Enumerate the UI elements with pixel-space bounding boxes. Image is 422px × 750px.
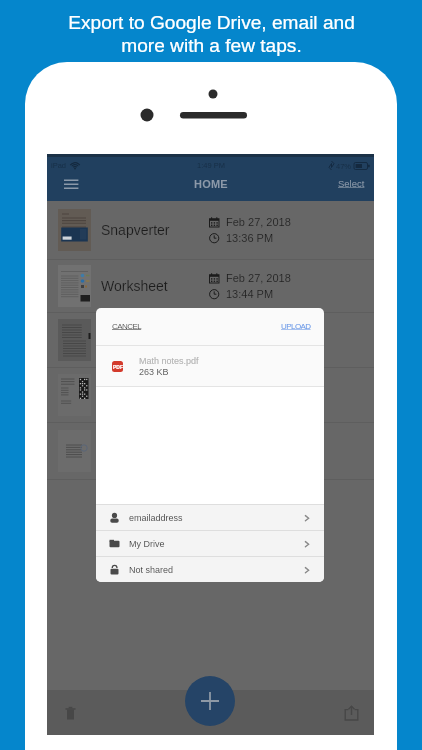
staticText: Worksheet [101, 278, 168, 294]
staticText: emailaddress [129, 513, 183, 523]
staticText: Math notes.pdf [139, 356, 199, 366]
staticText: HOME [194, 178, 228, 190]
staticText: Snapverter [101, 222, 170, 238]
button[interactable]: Worksheet [47, 260, 374, 313]
button[interactable]: Delete [55, 698, 85, 728]
staticText: Not shared [129, 565, 174, 575]
button[interactable]: Select [335, 175, 368, 192]
staticText: 1:49 PM [197, 161, 225, 169]
button[interactable]: emailaddress [96, 505, 324, 530]
button[interactable]: Share [336, 698, 366, 728]
button[interactable]: PDF [112, 346, 324, 386]
staticText: iPad [51, 161, 67, 169]
staticText: 263 KB [139, 367, 169, 377]
staticText: PDF [113, 364, 123, 370]
button[interactable]: Menu [57, 177, 81, 191]
button[interactable]: Snapverter [47, 201, 374, 260]
staticText: Export to Google Drive, email and [68, 12, 355, 33]
staticText: CANCEL [112, 322, 142, 331]
button[interactable]: CANCEL [108, 318, 146, 335]
staticText: 13:36 PM [226, 232, 274, 244]
button[interactable]: Add [185, 676, 235, 726]
button[interactable]: My Drive [96, 531, 324, 556]
staticText: UPLOAD [281, 322, 311, 331]
staticText: more with a few taps. [121, 35, 302, 56]
button[interactable] [47, 368, 374, 423]
staticText: 13:44 PM [226, 288, 274, 300]
button[interactable]: Not shared [96, 557, 324, 582]
staticText: My Drive [129, 539, 165, 549]
button[interactable] [47, 423, 374, 480]
button[interactable] [47, 313, 374, 368]
staticText: Feb 27, 2018 [226, 272, 291, 284]
staticText: 47% [336, 162, 352, 170]
staticText: Feb 27, 2018 [226, 216, 291, 228]
staticText: Select [338, 178, 365, 189]
button[interactable]: UPLOAD [277, 318, 315, 335]
